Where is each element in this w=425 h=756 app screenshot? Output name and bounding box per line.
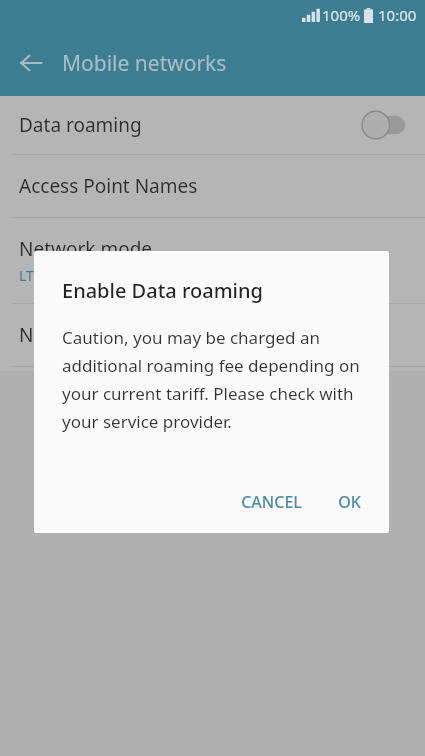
button[interactable]: Data roaming xyxy=(0,96,425,154)
staticText: Network operators xyxy=(19,322,188,348)
button[interactable]: Network operators xyxy=(0,304,425,366)
staticText: Enable Data roaming xyxy=(62,277,263,304)
button[interactable]: Network mode xyxy=(0,218,425,303)
staticText: Access Point Names xyxy=(19,173,198,199)
staticText: Data roaming xyxy=(19,112,142,138)
button[interactable]: CANCEL xyxy=(227,481,316,523)
staticText: Network mode xyxy=(19,236,153,262)
staticText: Caution, you may be charged an additiona… xyxy=(62,326,367,433)
staticText: Mobile networks xyxy=(62,49,227,78)
staticText: 100% xyxy=(322,5,361,25)
button[interactable]: Data roaming switch xyxy=(361,110,409,140)
staticText: LTE/WCDMA/GSM (auto connect) xyxy=(19,266,235,285)
staticText: OK xyxy=(338,491,361,513)
button[interactable]: Navigate up xyxy=(8,40,54,86)
staticText: 10:00 xyxy=(378,5,417,25)
staticText: CANCEL xyxy=(241,491,302,513)
button[interactable]: OK xyxy=(324,481,375,523)
button[interactable]: Access Point Names xyxy=(0,155,425,217)
